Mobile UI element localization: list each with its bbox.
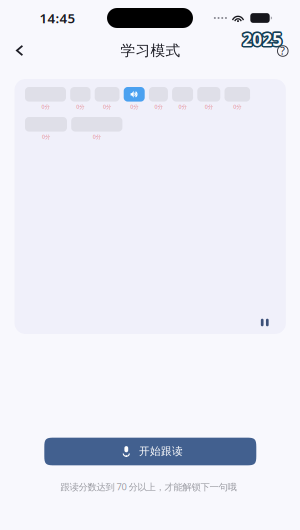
staticText: 2025 bbox=[242, 29, 282, 52]
staticText: 跟读分数达到 70 分以上，才能解锁下一句哦 bbox=[61, 480, 237, 493]
staticText: 2025 bbox=[244, 28, 284, 51]
staticText: ? bbox=[280, 44, 285, 58]
staticText: 2025 bbox=[241, 28, 281, 51]
staticText: 2025 bbox=[243, 28, 283, 51]
staticText: 0分 bbox=[103, 103, 111, 110]
staticText: 0分 bbox=[42, 133, 50, 140]
button[interactable]: Pause bbox=[256, 314, 274, 330]
staticText: 14:45 bbox=[39, 9, 75, 27]
staticText: 开始跟读 bbox=[139, 445, 183, 458]
button[interactable]: 开始跟读 bbox=[44, 438, 256, 465]
staticText: 2025 bbox=[241, 29, 281, 52]
staticText: 0分 bbox=[179, 103, 187, 110]
staticText: 学习模式 bbox=[120, 41, 180, 59]
staticText: 0分 bbox=[41, 103, 49, 110]
staticText: 0分 bbox=[93, 133, 101, 140]
staticText: 0分 bbox=[205, 103, 213, 110]
staticText: 2025 bbox=[241, 28, 281, 51]
staticText: 2025 bbox=[242, 28, 282, 51]
button[interactable]: Back bbox=[5, 36, 35, 64]
staticText: 0分 bbox=[154, 103, 162, 110]
staticText: 2025 bbox=[243, 27, 283, 50]
staticText: 2025 bbox=[241, 27, 281, 50]
staticText: 0分 bbox=[233, 103, 241, 110]
staticText: 2025 bbox=[242, 26, 282, 49]
staticText: 0分 bbox=[76, 103, 84, 110]
button[interactable]: Help bbox=[272, 39, 294, 63]
staticText: 0分 bbox=[130, 103, 138, 110]
staticText: 2025 bbox=[243, 29, 283, 52]
